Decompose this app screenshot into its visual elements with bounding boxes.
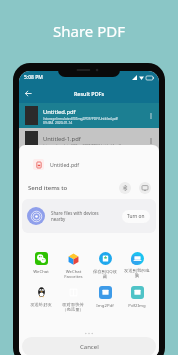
- staticText: nearby: [51, 216, 66, 222]
- staticText: Cancel: [80, 343, 99, 351]
- button[interactable]: WeChat Favorites: [57, 252, 89, 279]
- staticText: WeChat: [33, 268, 49, 274]
- staticText: Img2Pdf: [96, 302, 114, 308]
- staticText: /storage/emulated/0/Img2PDF/PDF/Untitled…: [43, 116, 118, 120]
- button[interactable]: 发送到我的电 脑: [121, 252, 153, 278]
- button[interactable]: 发送给好友: [25, 286, 57, 307]
- staticText: Share PDF: [53, 21, 125, 41]
- staticText: Share files with devices: [51, 210, 99, 216]
- button[interactable]: 面对面快传 （免流量）: [57, 286, 89, 312]
- staticText: Untitled.pdf: [50, 161, 80, 168]
- button[interactable]: More options: [146, 136, 156, 146]
- staticText: 5:08 PM: [24, 74, 43, 81]
- staticText: 面对面快传 （免流量）: [62, 302, 84, 312]
- staticText: Untitled-1.pdf: [43, 135, 81, 143]
- staticText: WeChat Favorites: [64, 268, 83, 279]
- button[interactable]: Share files with devices: [22, 199, 156, 233]
- button[interactable]: More options: [146, 111, 156, 121]
- button[interactable]: Untitled.pdf: [25, 103, 156, 128]
- staticText: Turn on: [127, 213, 145, 220]
- button[interactable]: 保存到QQ收 藏: [89, 252, 121, 279]
- staticText: 发送给好友: [30, 302, 52, 307]
- button[interactable]: Cancel: [22, 337, 156, 355]
- button[interactable]: Back: [19, 84, 38, 103]
- button[interactable]: Pdf2Img: [121, 286, 153, 308]
- button[interactable]: Turn on: [122, 210, 150, 223]
- staticText: Untitled.pdf: [43, 108, 76, 116]
- button[interactable]: Cast to device: [139, 182, 151, 194]
- button[interactable]: Img2Pdf: [89, 286, 121, 308]
- staticText: Pdf2Img: [128, 302, 146, 308]
- button[interactable]: Bluetooth: [119, 182, 131, 194]
- button[interactable]: WeChat: [25, 252, 57, 274]
- staticText: Result PDFs: [38, 90, 140, 97]
- staticText: 09:384 2020-01-14: [43, 120, 73, 124]
- staticText: /storage/emulated/0/Img2PDF/PDF/Untitled…: [43, 143, 121, 147]
- staticText: 保存到QQ收 藏: [93, 268, 117, 279]
- button[interactable]: Untitled-1.pdf: [25, 128, 156, 153]
- staticText: 发送到我的电 脑: [124, 268, 150, 278]
- staticText: Send items to: [28, 184, 68, 192]
